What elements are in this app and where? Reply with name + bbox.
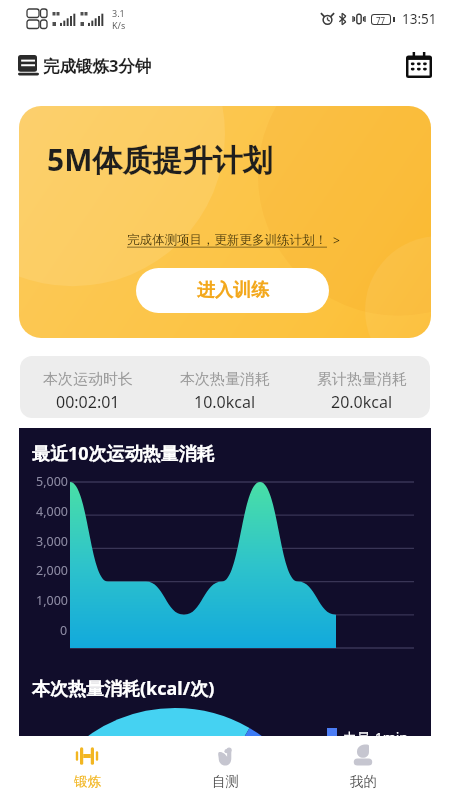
staticText: 10.0kcal bbox=[194, 391, 256, 413]
staticText: 最近10次运动热量消耗 bbox=[32, 441, 215, 466]
staticText: 20.0kcal bbox=[331, 391, 393, 413]
staticText: 3.1 bbox=[112, 7, 125, 19]
button[interactable]: 进入训练 bbox=[136, 268, 329, 313]
staticText: K/s bbox=[112, 19, 126, 31]
staticText: 本次热量消耗(kcal/次) bbox=[32, 676, 215, 701]
staticText: 0 bbox=[60, 622, 68, 639]
staticText: > bbox=[333, 232, 340, 248]
staticText: 00:02:01 bbox=[56, 391, 120, 413]
staticText: 力量 1min bbox=[343, 728, 409, 736]
button[interactable]: 我的 bbox=[294, 736, 432, 800]
staticText: 77 bbox=[376, 15, 386, 24]
staticText: 本次热量消耗 bbox=[180, 370, 270, 389]
staticText: 本次运动时长 bbox=[43, 370, 133, 389]
button[interactable]: 锻炼 bbox=[18, 736, 156, 800]
staticText: 1,000 bbox=[36, 592, 68, 609]
staticText: 5,000 bbox=[36, 473, 68, 490]
staticText: 完成锻炼3分钟 bbox=[43, 54, 152, 77]
staticText: 我的 bbox=[350, 773, 377, 790]
staticText: 13:51 bbox=[402, 10, 437, 28]
staticText: 累计热量消耗 bbox=[317, 370, 407, 389]
staticText: 自测 bbox=[212, 773, 239, 790]
staticText: 3,000 bbox=[36, 533, 68, 550]
staticText: 完成体测项目，更新更多训练计划！ bbox=[127, 232, 327, 248]
staticText: 锻炼 bbox=[74, 773, 101, 790]
button[interactable]: 自测 bbox=[156, 736, 294, 800]
button[interactable]: Calendar bbox=[400, 46, 438, 84]
staticText: 4,000 bbox=[36, 503, 68, 520]
staticText: 5M体质提升计划 bbox=[47, 139, 273, 180]
staticText: 2,000 bbox=[36, 562, 68, 579]
staticText: 进入训练 bbox=[197, 279, 269, 302]
button[interactable]: 5M体质提升计划 bbox=[19, 106, 431, 338]
